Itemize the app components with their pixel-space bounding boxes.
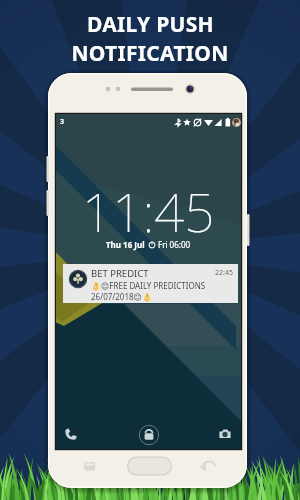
button[interactable]: Unlock [138, 424, 160, 446]
staticText: 22:45 [215, 268, 233, 278]
staticText: BET PREDICT [91, 267, 149, 280]
staticText: 👌😊FREE DAILY PREDICTIONS [91, 280, 206, 291]
staticText: 3 [60, 117, 65, 127]
button[interactable]: BET PREDICT [63, 264, 238, 303]
button[interactable]: Camera [215, 424, 235, 444]
staticText: 11:45 [82, 175, 215, 247]
staticText: NOTIFICATION [71, 39, 229, 68]
staticText: DAILY PUSH [87, 10, 214, 39]
staticText: Thu 16 Jul [106, 239, 145, 250]
staticText: Fri 06:00 [158, 239, 191, 250]
button[interactable]: Phone [61, 424, 81, 444]
staticText: 26/07/2018😊👌 [91, 291, 152, 302]
